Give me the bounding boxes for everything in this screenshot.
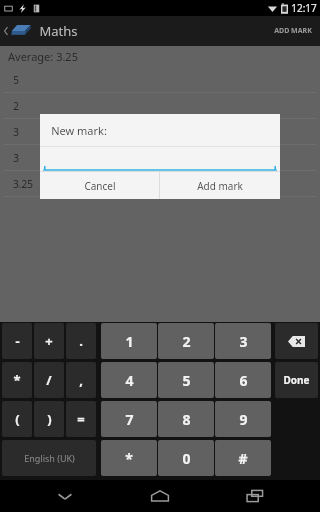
staticText: 8 [182, 410, 191, 429]
staticText: 5 [13, 73, 19, 87]
staticText: # [238, 449, 248, 468]
staticText: Average: 3.25 [8, 49, 78, 64]
staticText: , [79, 371, 83, 389]
button[interactable]: 1 [101, 323, 157, 359]
button[interactable]: 4 [101, 362, 157, 398]
button[interactable]: ADD MARK [266, 16, 320, 46]
button[interactable]: # [215, 440, 271, 476]
staticText: ADD MARK [274, 26, 312, 36]
staticText: Cancel [84, 179, 116, 193]
staticText: * [13, 371, 21, 389]
staticText: 6 [239, 371, 248, 390]
button[interactable]: Maths [0, 16, 84, 46]
staticText: 3 [13, 125, 19, 139]
staticText: . [79, 332, 83, 350]
staticText: 5 [182, 371, 191, 390]
button[interactable]: 3 [0, 119, 320, 145]
staticText: - [15, 332, 20, 350]
button[interactable]: English (UK) [2, 440, 96, 476]
staticText: / [46, 371, 52, 389]
button[interactable]: 3.25 [0, 171, 320, 197]
button[interactable]: ) [34, 401, 64, 437]
button[interactable]: , [66, 362, 96, 398]
staticText: + [45, 332, 53, 350]
button[interactable]: ( [2, 401, 32, 437]
button[interactable]: 3 [0, 145, 320, 171]
button[interactable]: + [34, 323, 64, 359]
staticText: Add mark [197, 179, 243, 193]
button[interactable]: 0 [158, 440, 214, 476]
staticText: 3.25 [13, 177, 33, 191]
staticText: English (UK) [24, 452, 75, 464]
button[interactable]: Home [130, 480, 190, 512]
button[interactable]: 9 [215, 401, 271, 437]
button[interactable]: . [66, 323, 96, 359]
button[interactable]: / [34, 362, 64, 398]
button[interactable]: 6 [215, 362, 271, 398]
button[interactable]: Add mark [160, 172, 280, 199]
button[interactable]: 8 [158, 401, 214, 437]
staticText: = [77, 410, 85, 428]
staticText: 1 [125, 332, 134, 351]
button[interactable]: - [2, 323, 32, 359]
staticText: 2 [182, 332, 191, 351]
button[interactable]: 3 [215, 323, 271, 359]
button[interactable]: * [2, 362, 32, 398]
button[interactable]: Cancel [40, 172, 159, 199]
staticText: 12:17 [291, 1, 317, 15]
staticText: 3 [239, 332, 248, 351]
button[interactable]: 2 [158, 323, 214, 359]
staticText: 7 [125, 410, 134, 429]
staticText: 9 [239, 410, 248, 429]
staticText: 4 [125, 371, 134, 390]
staticText: New mark: [51, 123, 107, 138]
button[interactable]: = [66, 401, 96, 437]
button[interactable]: 7 [101, 401, 157, 437]
staticText: ) [47, 410, 52, 428]
button[interactable]: Done [275, 362, 318, 398]
button[interactable]: Hide keyboard [35, 480, 95, 512]
staticText: ( [15, 410, 20, 428]
staticText: Maths [39, 22, 78, 40]
button[interactable]: 2 [0, 93, 320, 119]
button[interactable]: 5 [158, 362, 214, 398]
staticText: 2 [13, 99, 19, 113]
button[interactable]: Recent apps [225, 480, 285, 512]
staticText: * [125, 449, 133, 468]
button[interactable]: Delete [275, 323, 318, 359]
staticText: 3 [13, 151, 19, 165]
staticText: 0 [182, 449, 191, 468]
button[interactable]: * [101, 440, 157, 476]
staticText: Done [283, 373, 310, 387]
